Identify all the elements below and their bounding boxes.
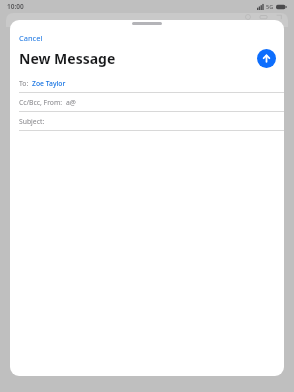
button[interactable]: Cancel [15,32,47,44]
button[interactable]: Subject: [10,112,284,130]
staticText: Subject: [19,117,45,126]
staticText: a@ [66,98,76,107]
staticText: 10:00 [7,2,24,11]
button[interactable]: Cc/Bcc, From: [10,93,284,111]
button[interactable]: Send [257,49,276,68]
staticText: Cancel [19,33,43,43]
staticText: To: [19,79,29,88]
button[interactable]: To: [10,74,284,92]
staticText: New Message [19,49,116,68]
staticText: 5G [266,3,274,10]
staticText: Cc/Bcc, From: [19,98,63,107]
staticText: Zoe Taylor [32,79,66,88]
